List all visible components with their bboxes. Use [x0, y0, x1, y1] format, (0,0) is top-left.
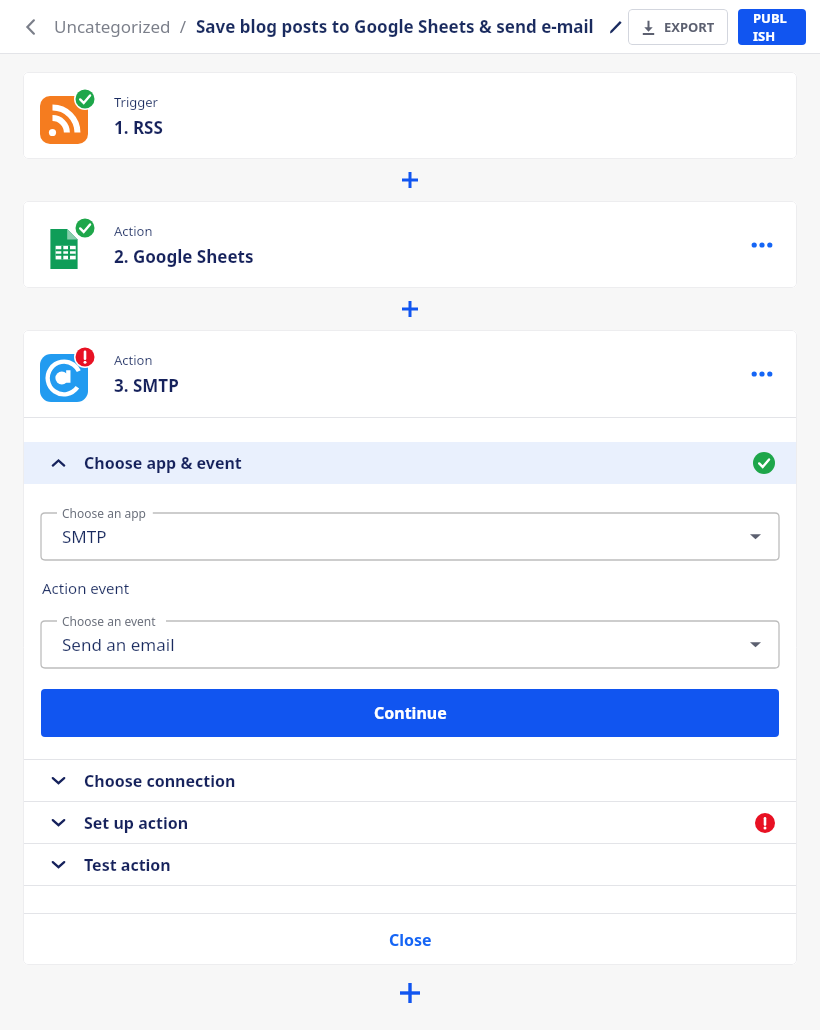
staticText: Test action	[84, 854, 171, 876]
staticText: Trigger	[114, 93, 158, 111]
staticText: Choose connection	[84, 770, 236, 792]
staticText: Action	[114, 351, 153, 369]
button[interactable]: Close	[23, 914, 797, 965]
staticText: Uncategorized	[54, 15, 171, 38]
button[interactable]: Add step	[396, 295, 424, 323]
staticText: 1. RSS	[114, 116, 163, 139]
button[interactable]: Test action	[23, 844, 797, 885]
button[interactable]: Choose an event	[41, 612, 779, 668]
staticText: Continue	[374, 702, 447, 724]
staticText: /	[171, 15, 196, 38]
staticText: Choose app & event	[84, 452, 242, 474]
button[interactable]: PUBLISH	[738, 9, 806, 45]
staticText: Set up action	[84, 812, 189, 834]
staticText: EXPORT	[664, 18, 715, 36]
button[interactable]: Choose app & event	[23, 442, 797, 484]
staticText: Choose an app	[62, 505, 146, 521]
staticText: SMTP	[62, 525, 107, 548]
staticText: Choose an event	[62, 613, 156, 629]
button[interactable]: Choose connection	[23, 760, 797, 801]
button[interactable]: Continue	[41, 689, 779, 737]
button[interactable]: Set up action	[23, 802, 797, 843]
staticText: Action	[114, 222, 153, 240]
staticText: Action event	[42, 578, 130, 598]
button[interactable]: More options	[744, 227, 780, 263]
button[interactable]: Add step	[393, 976, 427, 1010]
staticText: PUBLISH	[753, 9, 791, 45]
button[interactable]: More options	[744, 356, 780, 392]
button[interactable]: Rename	[602, 14, 628, 40]
button[interactable]: EXPORT	[628, 9, 728, 45]
staticText: 2. Google Sheets	[114, 245, 254, 268]
staticText: Close	[389, 929, 432, 951]
button[interactable]: Action	[23, 201, 797, 288]
button[interactable]: Choose an app	[41, 504, 779, 560]
staticText: Save blog posts to Google Sheets & send …	[196, 15, 594, 38]
button[interactable]: Action	[23, 330, 797, 417]
button[interactable]: Add step	[396, 166, 424, 194]
staticText: Send an email	[62, 633, 175, 656]
staticText: 3. SMTP	[114, 374, 179, 397]
button[interactable]: Back	[14, 10, 48, 44]
button[interactable]: Trigger	[23, 72, 797, 159]
